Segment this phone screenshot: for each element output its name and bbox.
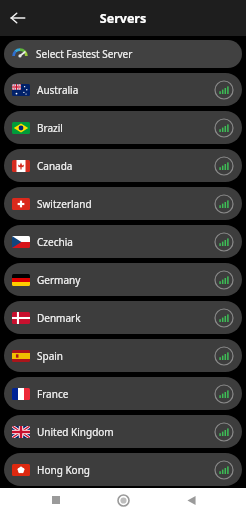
button[interactable]: Australia: [4, 73, 242, 106]
button[interactable]: Brazil: [4, 111, 242, 144]
button[interactable]: Back: [179, 488, 203, 512]
staticText: Spain: [37, 349, 214, 363]
button[interactable]: Back: [4, 4, 32, 32]
button[interactable]: Spain: [4, 339, 242, 372]
button[interactable]: Canada: [4, 149, 242, 182]
button[interactable]: Czechia: [4, 225, 242, 258]
staticText: Czechia: [37, 235, 214, 249]
staticText: Servers: [0, 10, 246, 27]
staticText: United Kingdom: [37, 425, 214, 439]
button[interactable]: Select Fastest Server: [4, 40, 242, 68]
staticText: Switzerland: [37, 197, 214, 211]
staticText: Australia: [37, 83, 214, 97]
button[interactable]: Hong Kong: [4, 453, 242, 486]
button[interactable]: Recent apps: [44, 488, 68, 512]
staticText: Denmark: [37, 311, 214, 325]
staticText: Select Fastest Server: [36, 47, 133, 61]
button[interactable]: Denmark: [4, 301, 242, 334]
staticText: France: [37, 387, 214, 401]
button[interactable]: Switzerland: [4, 187, 242, 220]
button[interactable]: France: [4, 377, 242, 410]
button[interactable]: Germany: [4, 263, 242, 296]
staticText: Hong Kong: [37, 463, 214, 477]
staticText: Brazil: [37, 121, 214, 135]
staticText: Canada: [37, 159, 214, 173]
button[interactable]: Home: [111, 488, 135, 512]
button[interactable]: United Kingdom: [4, 415, 242, 448]
staticText: Germany: [37, 273, 214, 287]
